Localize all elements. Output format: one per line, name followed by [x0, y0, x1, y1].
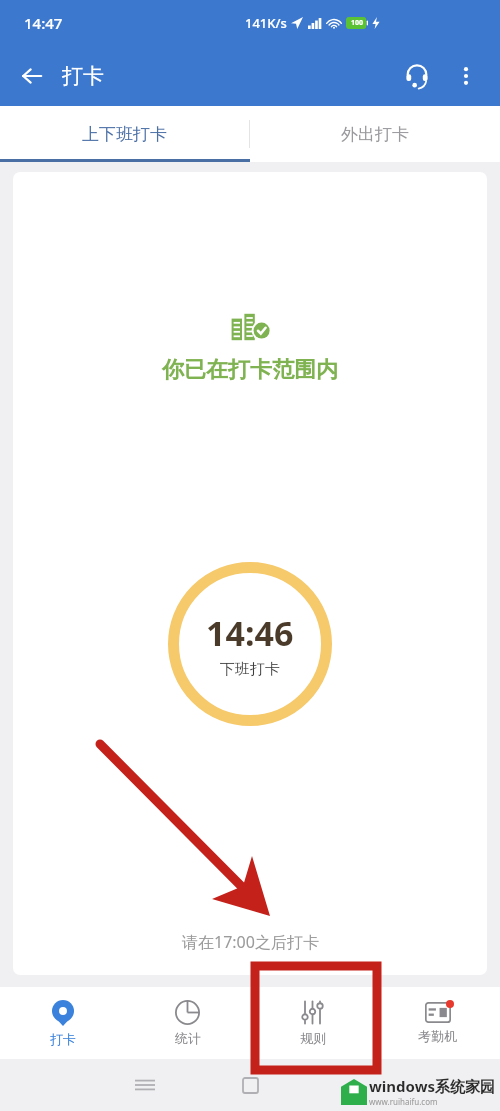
- button[interactable]: 统计: [125, 987, 250, 1059]
- staticText: 14:47: [24, 13, 63, 33]
- button[interactable]: 考勤机: [375, 987, 500, 1059]
- button[interactable]: 外出打卡: [250, 106, 500, 162]
- staticText: 你已在打卡范围内: [162, 356, 338, 384]
- staticText: 上下班打卡: [82, 124, 167, 145]
- staticText: 打卡: [62, 63, 104, 89]
- staticText: 请在17:00之后打卡: [182, 931, 319, 953]
- button[interactable]: More options: [444, 54, 488, 98]
- staticText: 141K/s: [245, 14, 287, 32]
- staticText: 14:46: [206, 610, 294, 656]
- button[interactable]: 上下班打卡: [0, 106, 249, 162]
- staticText: 规则: [300, 1030, 326, 1046]
- button[interactable]: 打卡: [0, 987, 125, 1059]
- button[interactable]: Clock in: [168, 562, 332, 726]
- button[interactable]: Customer service: [394, 53, 440, 99]
- button[interactable]: 规则: [250, 987, 375, 1059]
- staticText: 外出打卡: [341, 124, 409, 145]
- staticText: 100: [351, 18, 364, 28]
- staticText: 下班打卡: [220, 660, 280, 679]
- staticText: www.ruihaifu.com: [369, 1096, 438, 1107]
- staticText: 考勤机: [418, 1028, 457, 1044]
- staticText: windows系统家园: [369, 1076, 496, 1096]
- staticText: 打卡: [50, 1031, 76, 1047]
- button[interactable]: Back: [10, 54, 54, 98]
- staticText: 统计: [175, 1030, 201, 1046]
